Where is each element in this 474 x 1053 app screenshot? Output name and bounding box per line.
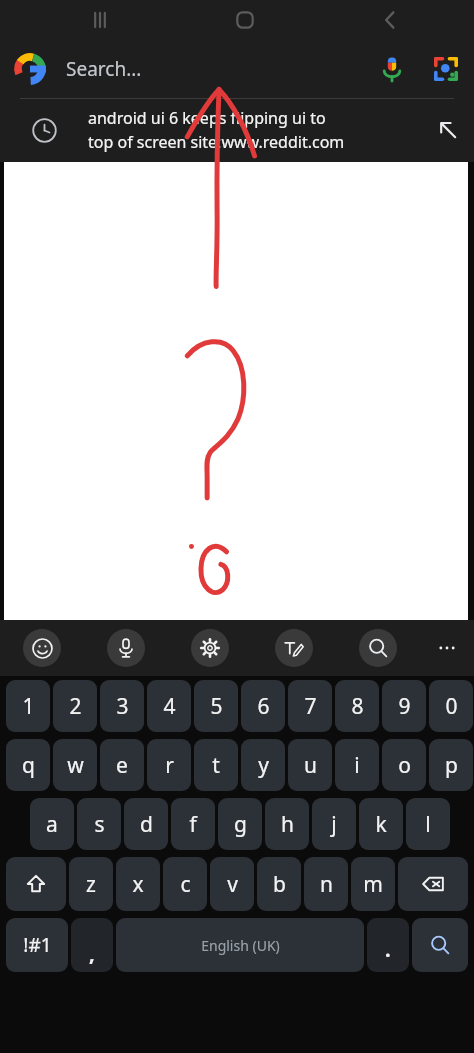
- button[interactable]: g: [218, 798, 262, 850]
- staticText: j: [331, 810, 337, 839]
- staticText: m: [363, 870, 383, 899]
- button[interactable]: Symbols: [6, 918, 68, 972]
- staticText: 1: [22, 692, 35, 721]
- button[interactable]: 4: [147, 680, 191, 732]
- staticText: 2: [69, 692, 82, 721]
- staticText: d: [140, 810, 153, 839]
- button[interactable]: o: [382, 739, 426, 791]
- staticText: 8: [351, 692, 364, 721]
- button[interactable]: u: [288, 739, 332, 791]
- button[interactable]: Emoji: [0, 620, 84, 676]
- staticText: h: [281, 810, 294, 839]
- staticText: i: [354, 751, 360, 780]
- staticText: 4: [163, 692, 176, 721]
- button[interactable]: w: [53, 739, 97, 791]
- button[interactable]: k: [359, 798, 403, 850]
- button[interactable]: 1: [6, 680, 50, 732]
- button[interactable]: f: [171, 798, 215, 850]
- button[interactable]: Home: [223, 0, 267, 40]
- staticText: z: [86, 870, 96, 899]
- staticText: n: [320, 870, 333, 899]
- button[interactable]: h: [265, 798, 309, 850]
- staticText: 0: [445, 692, 458, 721]
- staticText: English (UK): [201, 936, 280, 955]
- staticText: c: [180, 870, 191, 899]
- button[interactable]: j: [312, 798, 356, 850]
- button[interactable]: Comma: [71, 918, 113, 972]
- button[interactable]: Recent apps: [78, 0, 122, 40]
- button[interactable]: q: [6, 739, 50, 791]
- staticText: u: [304, 751, 317, 780]
- button[interactable]: t: [194, 739, 238, 791]
- staticText: s: [94, 810, 105, 839]
- staticText: w: [67, 751, 84, 780]
- staticText: b: [273, 870, 286, 899]
- staticText: y: [258, 751, 269, 780]
- staticText: .: [385, 936, 391, 963]
- button[interactable]: d: [124, 798, 168, 850]
- staticText: e: [116, 751, 128, 780]
- button[interactable]: Insert suggestion: [422, 104, 474, 156]
- staticText: q: [22, 751, 35, 780]
- staticText: 5: [210, 692, 223, 721]
- button[interactable]: 2: [53, 680, 97, 732]
- staticText: p: [445, 751, 458, 780]
- button[interactable]: Search: [412, 918, 468, 972]
- button[interactable]: Shift: [6, 857, 66, 911]
- button[interactable]: Backspace: [398, 857, 468, 911]
- button[interactable]: n: [304, 857, 348, 911]
- staticText: r: [165, 751, 174, 780]
- button[interactable]: More options: [420, 620, 474, 676]
- button[interactable]: s: [77, 798, 121, 850]
- button[interactable]: r: [147, 739, 191, 791]
- button[interactable]: Voice input: [84, 620, 168, 676]
- button[interactable]: 5: [194, 680, 238, 732]
- button[interactable]: Period: [367, 918, 409, 972]
- button[interactable]: v: [210, 857, 254, 911]
- button[interactable]: Back: [368, 0, 412, 40]
- button[interactable]: Keyboard settings: [168, 620, 252, 676]
- button[interactable]: Google: [0, 40, 60, 98]
- staticText: 6: [257, 692, 270, 721]
- staticText: l: [425, 810, 431, 839]
- button[interactable]: 6: [241, 680, 285, 732]
- staticText: f: [189, 810, 197, 839]
- staticText: 7: [304, 692, 317, 721]
- button[interactable]: android ui 6 keeps flipping ui to: [0, 99, 474, 161]
- button[interactable]: z: [69, 857, 113, 911]
- button[interactable]: 9: [382, 680, 426, 732]
- staticText: a: [46, 810, 58, 839]
- button[interactable]: c: [163, 857, 207, 911]
- button[interactable]: Voice search: [366, 43, 418, 95]
- staticText: g: [234, 810, 247, 839]
- button[interactable]: 7: [288, 680, 332, 732]
- button[interactable]: 0: [429, 680, 473, 732]
- button[interactable]: i: [335, 739, 379, 791]
- button[interactable]: b: [257, 857, 301, 911]
- staticText: Search...: [66, 56, 142, 82]
- staticText: t: [212, 751, 220, 780]
- staticText: 9: [398, 692, 411, 721]
- button[interactable]: m: [351, 857, 395, 911]
- button[interactable]: p: [429, 739, 473, 791]
- button[interactable]: l: [406, 798, 450, 850]
- staticText: !#1: [23, 932, 52, 958]
- staticText: top of screen site:www.reddit.com: [88, 131, 345, 153]
- staticText: v: [227, 870, 238, 899]
- button[interactable]: Search...: [66, 40, 366, 98]
- button[interactable]: y: [241, 739, 285, 791]
- button[interactable]: 3: [100, 680, 144, 732]
- staticText: k: [375, 810, 387, 839]
- button[interactable]: a: [30, 798, 74, 850]
- staticText: o: [398, 751, 411, 780]
- button[interactable]: x: [116, 857, 160, 911]
- button[interactable]: Google Lens: [418, 41, 474, 97]
- button[interactable]: 8: [335, 680, 379, 732]
- button[interactable]: Space: [116, 918, 364, 972]
- staticText: x: [132, 870, 144, 899]
- button[interactable]: Search: [336, 620, 420, 676]
- staticText: android ui 6 keeps flipping ui to: [88, 107, 326, 129]
- button[interactable]: Handwriting: [252, 620, 336, 676]
- staticText: ,: [89, 940, 95, 967]
- button[interactable]: e: [100, 739, 144, 791]
